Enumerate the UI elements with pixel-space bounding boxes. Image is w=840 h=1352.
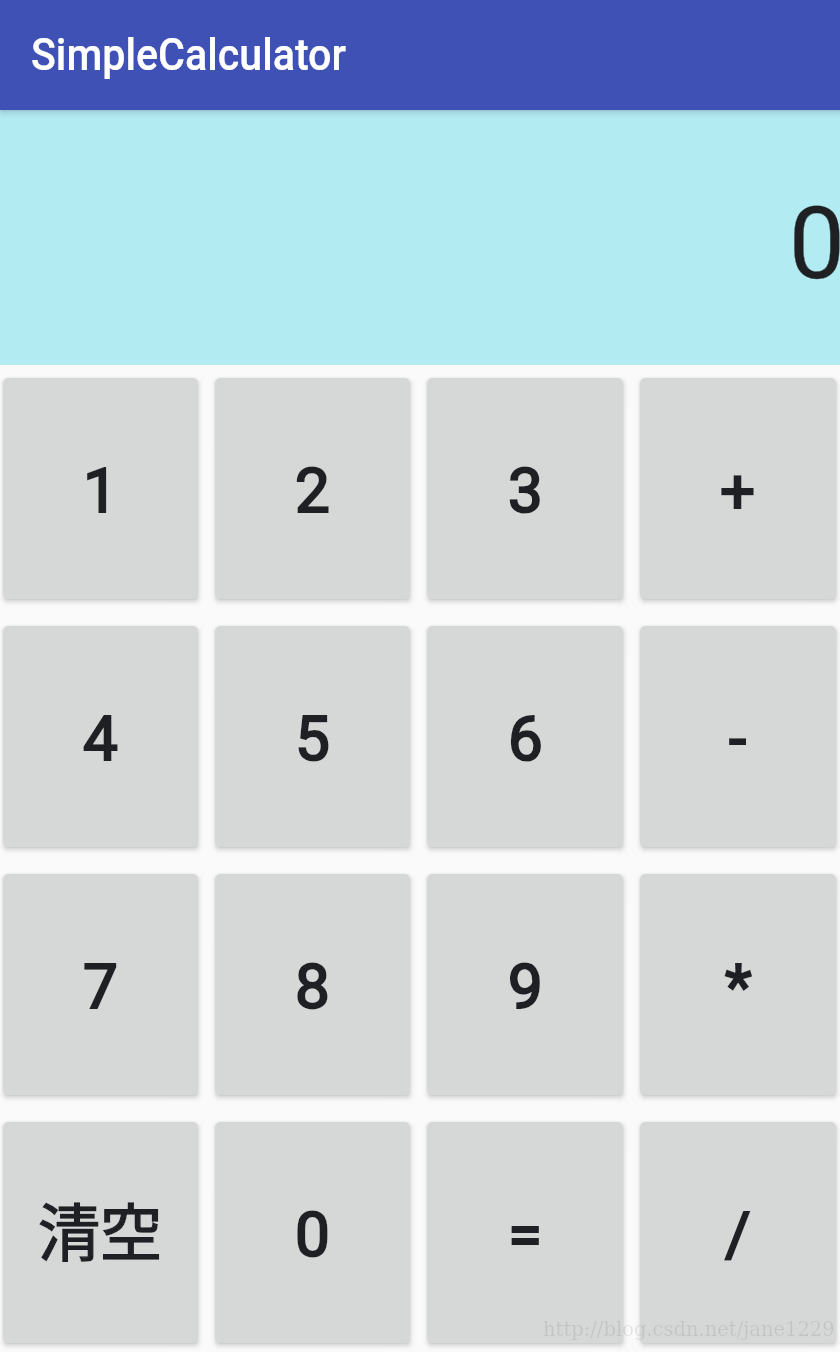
staticText: 清空	[38, 1184, 163, 1274]
staticText: 2	[295, 454, 330, 527]
button[interactable]: 9	[427, 874, 623, 1095]
staticText: 5	[295, 702, 330, 775]
staticText: 9	[508, 950, 543, 1023]
staticText: 7	[83, 950, 118, 1023]
staticText: 4	[83, 702, 118, 775]
staticText: 0	[295, 1198, 330, 1271]
button[interactable]: 7	[3, 874, 198, 1095]
staticText: 5	[295, 702, 330, 775]
staticText: 0	[5, 185, 840, 302]
staticText: /	[725, 1198, 751, 1271]
staticText: 0	[295, 1198, 330, 1271]
staticText: 1	[83, 454, 118, 527]
staticText: http://blog.csdn.net/jane1229	[543, 1318, 835, 1341]
staticText: 8	[295, 950, 330, 1023]
staticText: 6	[508, 702, 543, 775]
button[interactable]: Equals	[427, 1122, 623, 1343]
staticText: =	[508, 1198, 543, 1271]
staticText: 9	[508, 950, 543, 1023]
button[interactable]: 8	[215, 874, 410, 1095]
staticText: 6	[508, 702, 543, 775]
staticText: 2	[295, 454, 330, 527]
staticText: 1	[83, 454, 118, 527]
button[interactable]: Multiply	[640, 874, 836, 1095]
staticText: 0	[5, 185, 840, 302]
button[interactable]: Clear	[3, 1122, 198, 1343]
staticText: +	[720, 454, 756, 527]
button[interactable]: 5	[215, 626, 410, 847]
staticText: -	[729, 702, 747, 775]
button[interactable]: 4	[3, 626, 198, 847]
staticText: *	[725, 950, 752, 1023]
staticText: 清空	[38, 1184, 163, 1274]
button[interactable]: 6	[427, 626, 623, 847]
button[interactable]: Plus	[640, 378, 836, 599]
staticText: 3	[508, 454, 543, 527]
staticText: 7	[83, 950, 118, 1023]
button[interactable]: 1	[3, 378, 198, 599]
button[interactable]: Divide	[640, 1122, 836, 1343]
staticText: -	[729, 702, 747, 775]
staticText: SimpleCalculator	[31, 29, 346, 81]
staticText: +	[720, 454, 756, 527]
button[interactable]: 3	[427, 378, 623, 599]
staticText: 3	[508, 454, 543, 527]
staticText: 8	[295, 950, 330, 1023]
button[interactable]: Minus	[640, 626, 836, 847]
button[interactable]: 0	[215, 1122, 410, 1343]
staticText: /	[725, 1198, 751, 1271]
staticText: =	[508, 1198, 543, 1271]
staticText: 4	[83, 702, 118, 775]
button[interactable]: 2	[215, 378, 410, 599]
staticText: *	[725, 950, 752, 1023]
